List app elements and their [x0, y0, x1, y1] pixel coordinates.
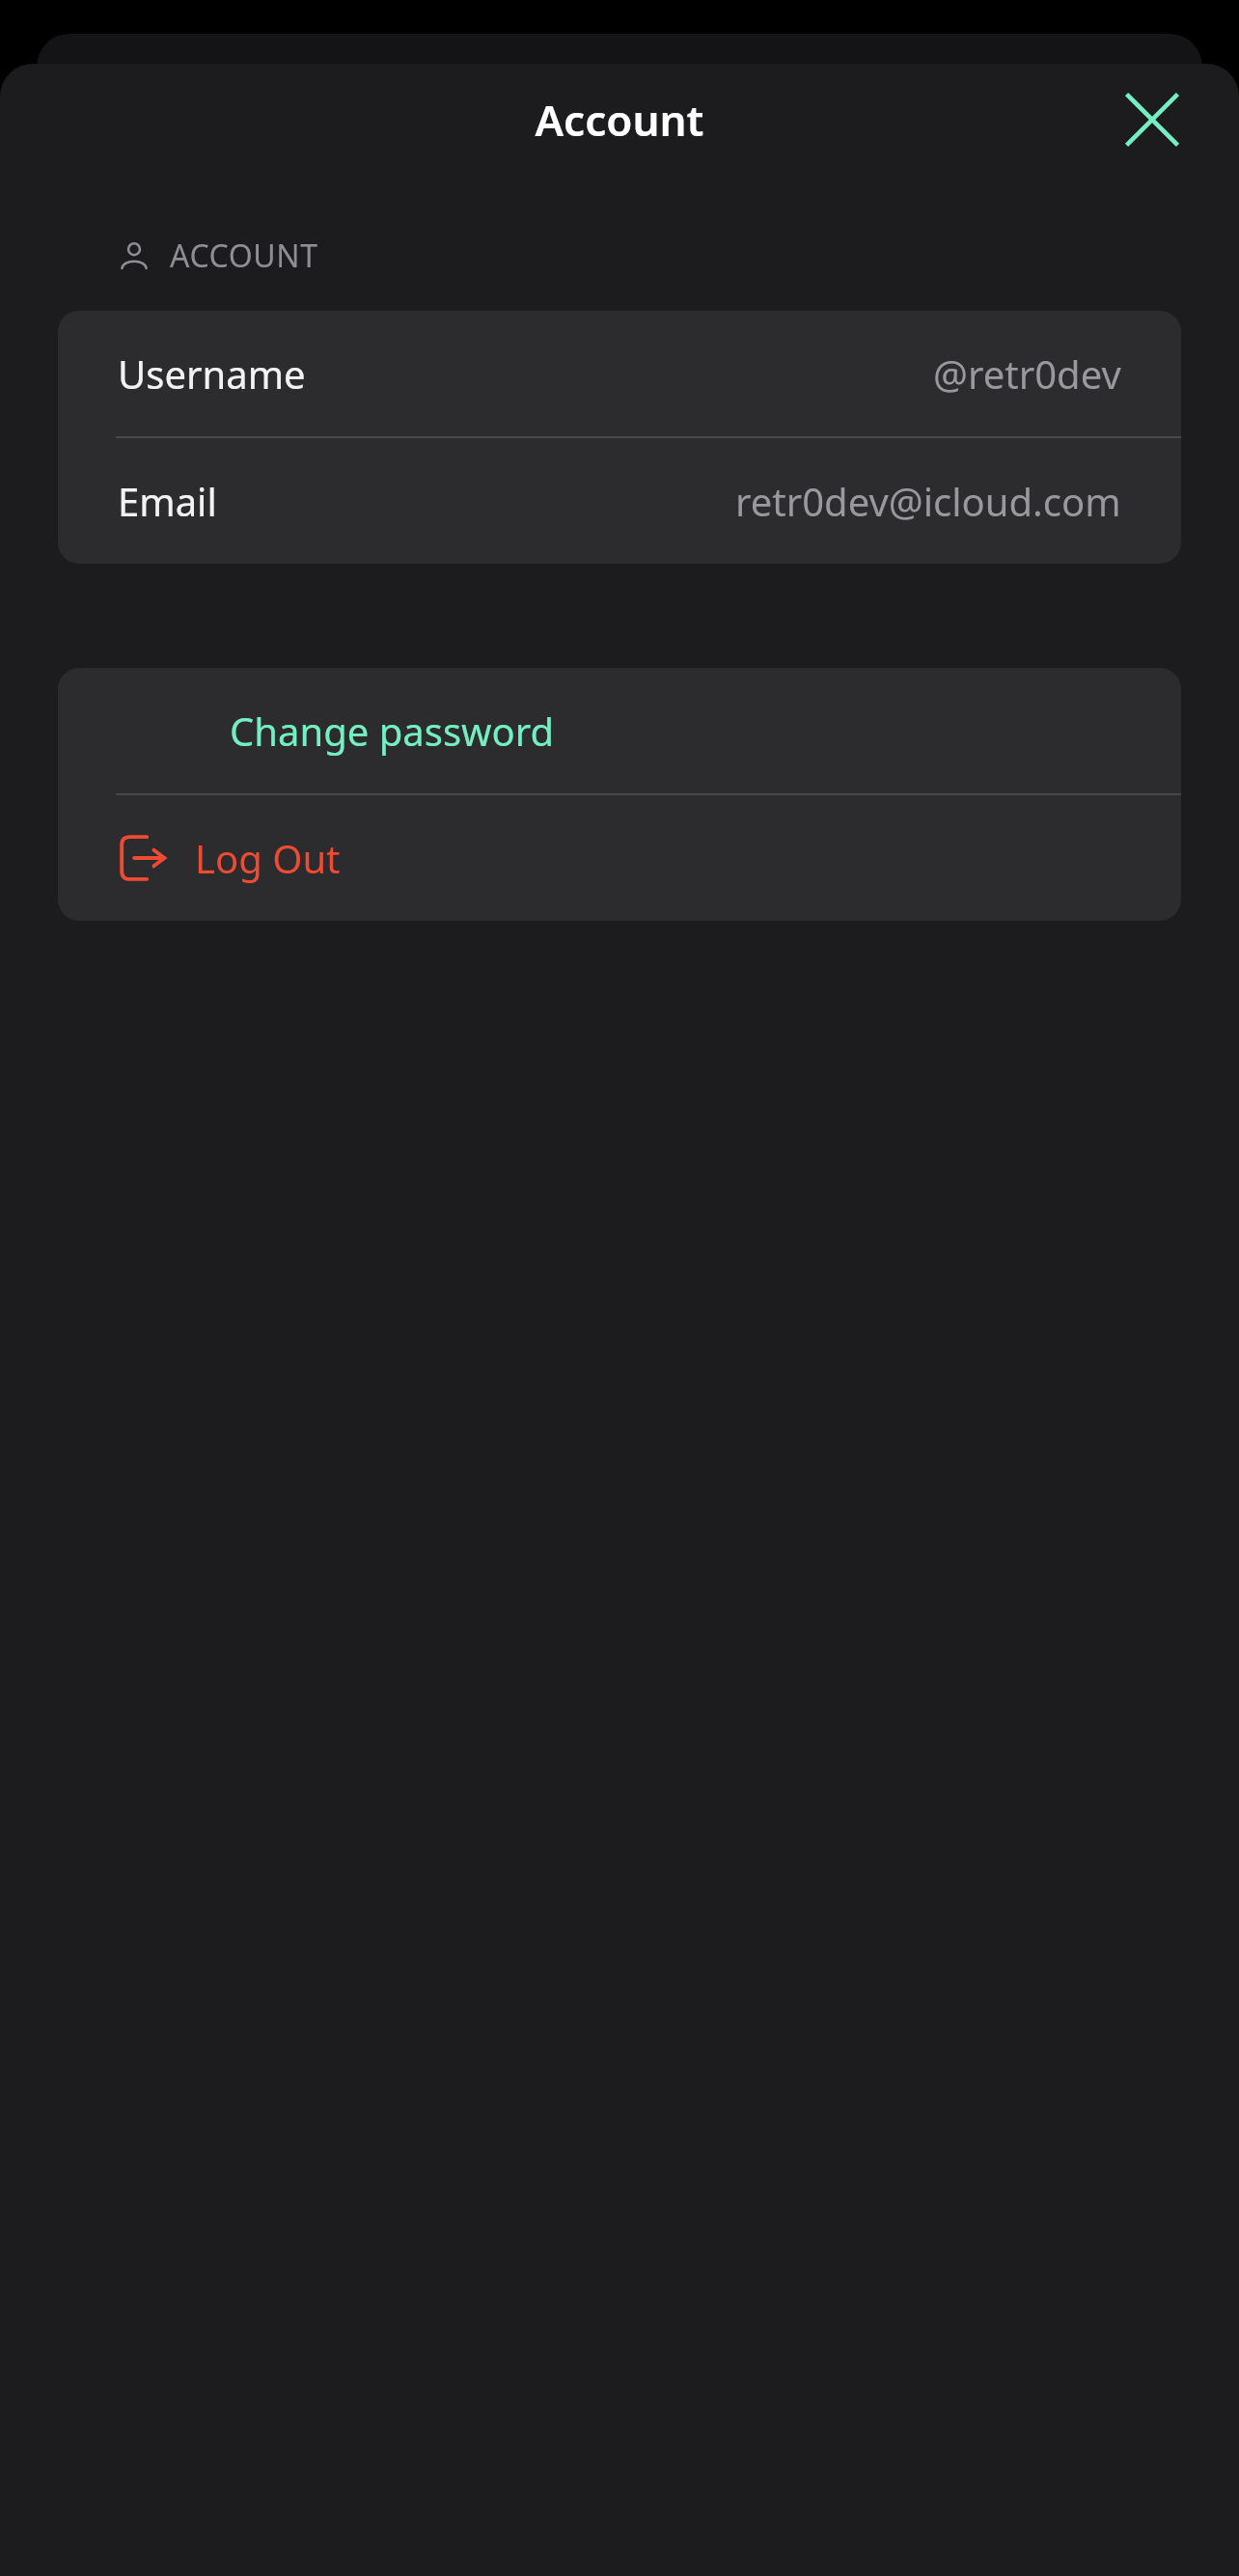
- button[interactable]: Username: [58, 311, 1181, 436]
- staticText: @retr0dev: [933, 347, 1121, 400]
- staticText: Change password: [230, 705, 555, 757]
- staticText: retr0dev@icloud.com: [735, 475, 1121, 527]
- staticText: Username: [118, 347, 306, 400]
- button[interactable]: Change password: [58, 668, 1181, 793]
- staticText: ACCOUNT: [170, 235, 318, 277]
- button[interactable]: Close: [1106, 73, 1198, 166]
- button[interactable]: Email: [58, 438, 1181, 564]
- staticText: Account: [0, 91, 1239, 149]
- staticText: Email: [118, 475, 217, 527]
- staticText: Log Out: [195, 832, 341, 884]
- button[interactable]: Log Out: [58, 795, 1181, 921]
